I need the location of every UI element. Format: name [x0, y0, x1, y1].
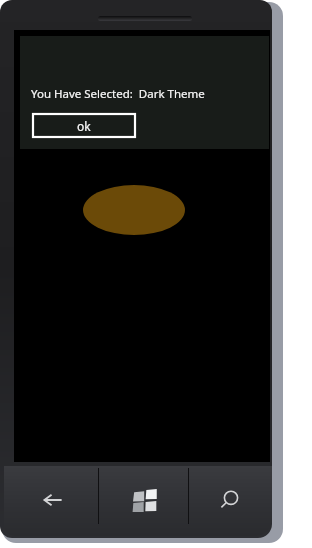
button[interactable]: ok — [32, 113, 136, 138]
button[interactable]: Back — [8, 466, 98, 534]
button[interactable]: Home — [99, 466, 188, 534]
staticText: ok — [77, 118, 91, 134]
button[interactable]: Search — [189, 466, 272, 534]
staticText: You Have Selected: Dark Theme — [31, 86, 205, 102]
